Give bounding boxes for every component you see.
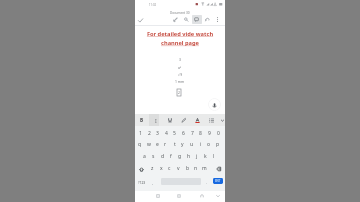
button[interactable]: f [166, 151, 175, 162]
staticText: 3 [179, 57, 181, 62]
button[interactable]: y [178, 139, 187, 150]
button[interactable]: d [158, 151, 167, 162]
staticText: 0 [217, 130, 220, 137]
button[interactable]: i [196, 139, 205, 150]
button[interactable] [192, 114, 202, 126]
staticText: 3 [156, 130, 159, 137]
button[interactable]: 2 [145, 128, 154, 139]
button[interactable]: Backspace [213, 164, 223, 174]
button[interactable]: x [157, 163, 166, 174]
button[interactable]: 0 [214, 128, 223, 139]
staticText: p [216, 141, 220, 148]
staticText: y [181, 141, 184, 148]
staticText: d [161, 153, 165, 160]
staticText: 1 [139, 130, 142, 137]
staticText: e [156, 141, 159, 148]
button[interactable]: Voice typing [208, 98, 221, 111]
button[interactable]: Home [174, 191, 184, 201]
staticText: B [140, 117, 144, 123]
staticText: 2 [178, 90, 180, 95]
button[interactable]: Hide keyboard [213, 191, 223, 201]
staticText: h [187, 153, 191, 160]
button[interactable]: Recent apps [153, 191, 163, 201]
staticText: a² [178, 65, 182, 70]
button[interactable]: a [140, 151, 149, 162]
button[interactable]: t [170, 139, 179, 150]
button[interactable]: I [151, 114, 161, 126]
button[interactable]: Search [182, 15, 191, 24]
button[interactable]: h [184, 151, 193, 162]
staticText: 2 [148, 130, 151, 137]
button[interactable]: g [175, 151, 184, 162]
button[interactable]: Edit mode [171, 15, 180, 24]
button[interactable]: Done [136, 16, 145, 25]
staticText: r [164, 141, 167, 148]
staticText: . [206, 180, 208, 185]
button[interactable]: More options [213, 15, 222, 24]
button[interactable]: 7 [188, 128, 197, 139]
staticText: i [200, 141, 202, 148]
button[interactable]: j [192, 151, 201, 162]
button[interactable]: 3 [153, 128, 162, 139]
button[interactable]: Symbols [136, 177, 148, 187]
staticText: k [204, 153, 207, 160]
button[interactable]: Comma [149, 177, 157, 187]
button[interactable]: k [201, 151, 210, 162]
staticText: w [147, 141, 151, 148]
staticText: 9 [208, 130, 211, 137]
button[interactable]: l [209, 151, 218, 162]
button[interactable]: b [183, 163, 192, 174]
staticText: 6 [182, 130, 185, 137]
button[interactable]: Enter [213, 178, 223, 184]
staticText: 11:02 [149, 3, 157, 7]
button[interactable]: 1 [136, 128, 145, 139]
staticText: 7 [191, 130, 194, 137]
staticText: u [190, 141, 194, 148]
button[interactable]: v [174, 163, 183, 174]
staticText: 1 mm [175, 79, 185, 84]
button[interactable]: 5 [170, 128, 179, 139]
staticText: , [152, 180, 154, 185]
staticText: 5 [173, 130, 176, 137]
button[interactable]: q [135, 139, 144, 150]
staticText: Document 30 [170, 11, 190, 15]
button[interactable]: 8 [196, 128, 205, 139]
staticText: q [138, 141, 142, 148]
button[interactable]: s [149, 151, 158, 162]
button[interactable]: n [191, 163, 200, 174]
button[interactable]: z [148, 163, 157, 174]
button[interactable] [165, 114, 175, 126]
button[interactable]: 6 [179, 128, 188, 139]
button[interactable]: u [187, 139, 196, 150]
staticText: j [196, 153, 198, 160]
button[interactable]: B [137, 114, 147, 126]
button[interactable]: 4 [162, 128, 171, 139]
staticText: For detailed vide watch channel page [141, 30, 219, 47]
staticText: ENT [215, 179, 221, 183]
button[interactable]: Back [197, 191, 207, 201]
button[interactable]: o [204, 139, 213, 150]
staticText: t [174, 141, 176, 148]
staticText: b [186, 165, 190, 172]
button[interactable]: e [153, 139, 162, 150]
button[interactable] [206, 114, 216, 126]
staticText: z [151, 165, 154, 172]
staticText: l [213, 153, 215, 160]
button[interactable] [217, 114, 227, 126]
button[interactable]: 9 [205, 128, 214, 139]
staticText: v [177, 165, 180, 172]
button[interactable]: Undo [203, 15, 212, 24]
button[interactable]: Comments [192, 15, 201, 24]
button[interactable]: m [200, 163, 209, 174]
staticText: I [155, 117, 157, 124]
staticText: n [194, 165, 198, 172]
button[interactable]: w [144, 139, 153, 150]
button[interactable]: r [161, 139, 170, 150]
button[interactable] [178, 114, 188, 126]
button[interactable]: c [165, 163, 174, 174]
button[interactable]: Shift [136, 164, 146, 174]
staticText: g [178, 153, 182, 160]
button[interactable]: p [213, 139, 222, 150]
